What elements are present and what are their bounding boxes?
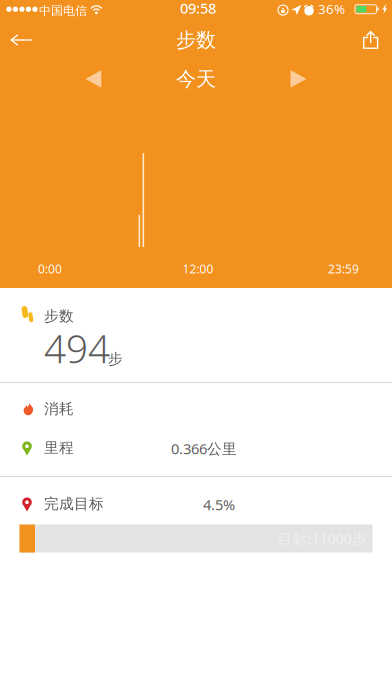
staticText: 23:59 (328, 261, 359, 277)
staticText: 步 (108, 350, 123, 368)
staticText: 12:00 (182, 261, 213, 277)
staticText: 0.366公里 (171, 439, 237, 458)
staticText: 消耗 (44, 400, 74, 418)
button[interactable]: Share (348, 18, 392, 62)
staticText: 今天 (176, 67, 216, 91)
staticText: 步数 (44, 307, 74, 325)
staticText: 09:58 (180, 0, 216, 18)
staticText: 0:00 (38, 261, 62, 277)
staticText: 步数 (176, 28, 216, 52)
staticText: 里程 (44, 439, 74, 457)
button[interactable]: Previous day (71, 61, 115, 97)
button[interactable]: Back (0, 18, 43, 62)
staticText: 完成目标 (44, 495, 104, 513)
staticText: 中国电信 (39, 3, 87, 18)
staticText: 4.5% (203, 495, 235, 514)
staticText: 36% (318, 0, 345, 18)
staticText: 目标:11000步 (277, 529, 366, 548)
button[interactable]: Next day (276, 61, 320, 97)
staticText: 494 (44, 322, 110, 374)
